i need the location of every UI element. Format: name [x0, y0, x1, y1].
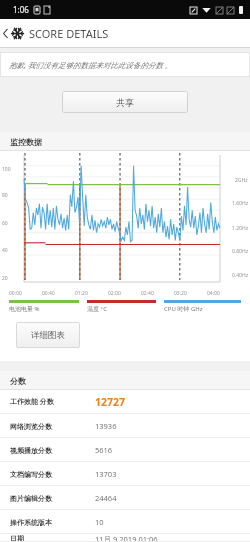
button[interactable]: 图片编辑分数 [0, 486, 250, 510]
staticText: 详细图表 [31, 330, 65, 341]
staticText: 视频播放分数 [10, 446, 95, 455]
staticText: 分数 [10, 376, 26, 386]
staticText: 1.60Hz [232, 200, 248, 207]
staticText: 网络浏览分数 [10, 422, 95, 431]
button[interactable]: 共享 [62, 91, 188, 113]
staticText: 00:40 [42, 290, 55, 297]
staticText: 监控数据 [10, 137, 42, 147]
staticText: 10 [95, 517, 104, 527]
button[interactable]: 网络浏览分数 [0, 414, 250, 438]
staticText: 12727 [95, 395, 126, 409]
staticText: CPU 时钟 GHz [164, 305, 241, 313]
staticText: 共享 [116, 97, 134, 108]
button[interactable]: 详细图表 [16, 322, 80, 348]
staticText: 03:20 [174, 290, 187, 297]
staticText: 40 [2, 247, 8, 254]
staticText: 13936 [95, 421, 117, 431]
staticText: 0.80Hz [232, 248, 248, 255]
staticText: 100 [2, 166, 11, 173]
staticText: 02:40 [141, 290, 154, 297]
staticText: 60 [2, 220, 8, 227]
button[interactable]: 视频播放分数 [0, 438, 250, 462]
staticText: 操作系统版本 [10, 518, 95, 527]
button[interactable]: 工作效能 分数 [0, 390, 250, 414]
staticText: 5616 [95, 445, 113, 455]
staticText: SCORE DETAILS [29, 26, 109, 41]
button[interactable]: Back [0, 19, 11, 48]
staticText: 13703 [95, 469, 117, 479]
staticText: 抱歉, 我们没有足够的数据来对比此设备的分数 。 [9, 60, 173, 70]
staticText: 文档编写分数 [10, 470, 95, 479]
staticText: 温度 °C [87, 305, 164, 313]
staticText: 电池电量 % [9, 305, 87, 313]
staticText: 00:00 [9, 290, 22, 297]
staticText: 04:00 [207, 290, 220, 297]
staticText: 工作效能 分数 [10, 397, 95, 407]
staticText: 2GHz [235, 177, 248, 184]
button[interactable]: 文档编写分数 [0, 462, 250, 486]
staticText: 1.20Hz [232, 225, 248, 232]
staticText: 20 [2, 275, 8, 282]
staticText: 1:06 [13, 4, 29, 15]
button[interactable]: 日期 [0, 534, 250, 542]
button[interactable]: 操作系统版本 [0, 510, 250, 534]
staticText: 0.40Hz [232, 272, 248, 279]
staticText: 02:00 [108, 290, 121, 297]
staticText: 11月 9 2019 01:06 [95, 534, 158, 542]
staticText: 24464 [95, 493, 117, 503]
staticText: 80 [2, 192, 8, 199]
staticText: 图片编辑分数 [10, 494, 95, 503]
staticText: 01:20 [75, 290, 88, 297]
staticText: 日期 [10, 534, 95, 542]
